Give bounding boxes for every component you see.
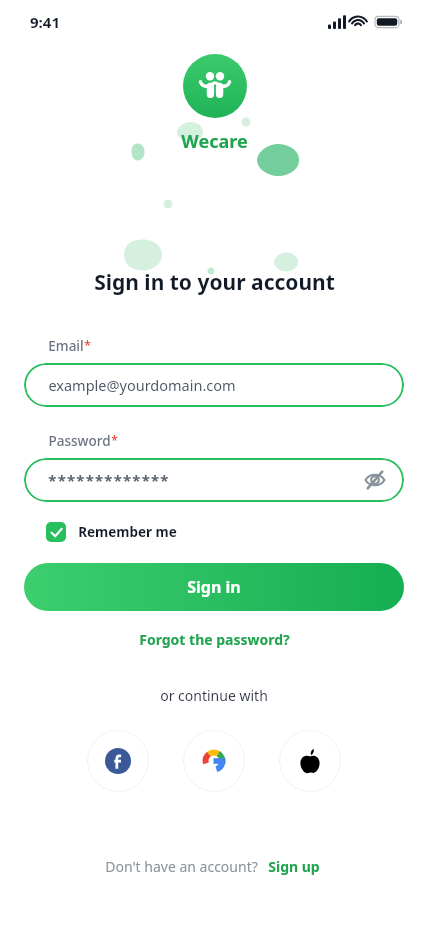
staticText: or continue with	[160, 686, 268, 705]
staticText: *************	[48, 470, 170, 490]
button[interactable]: Remember me	[40, 518, 183, 546]
staticText: Remember me	[78, 523, 177, 541]
staticText: *	[111, 432, 118, 448]
staticText: Email	[48, 337, 84, 355]
button[interactable]: Forgot the password?	[131, 627, 298, 652]
button[interactable]: Sign in with Apple	[279, 730, 341, 792]
button[interactable]: Sign up	[265, 855, 323, 878]
button[interactable]: Sign in with Facebook	[87, 730, 149, 792]
staticText: Sign up	[268, 857, 320, 876]
staticText: *	[84, 337, 91, 353]
staticText: 9:41	[30, 12, 60, 32]
staticText: Wecare	[181, 129, 248, 154]
button[interactable]: Sign in with Google	[183, 730, 245, 792]
staticText: Forgot the password?	[139, 630, 290, 649]
staticText: example@yourdomain.com	[48, 375, 236, 395]
button[interactable]: example@yourdomain.com	[24, 363, 404, 407]
staticText: Password	[48, 432, 111, 450]
button[interactable]: *************	[24, 458, 404, 502]
staticText: Sign in to your account	[94, 268, 335, 297]
staticText: Don't have an account?	[105, 857, 258, 876]
button[interactable]: Show password	[358, 463, 392, 497]
staticText: Sign in	[187, 576, 241, 598]
button[interactable]: Sign in	[24, 563, 404, 611]
